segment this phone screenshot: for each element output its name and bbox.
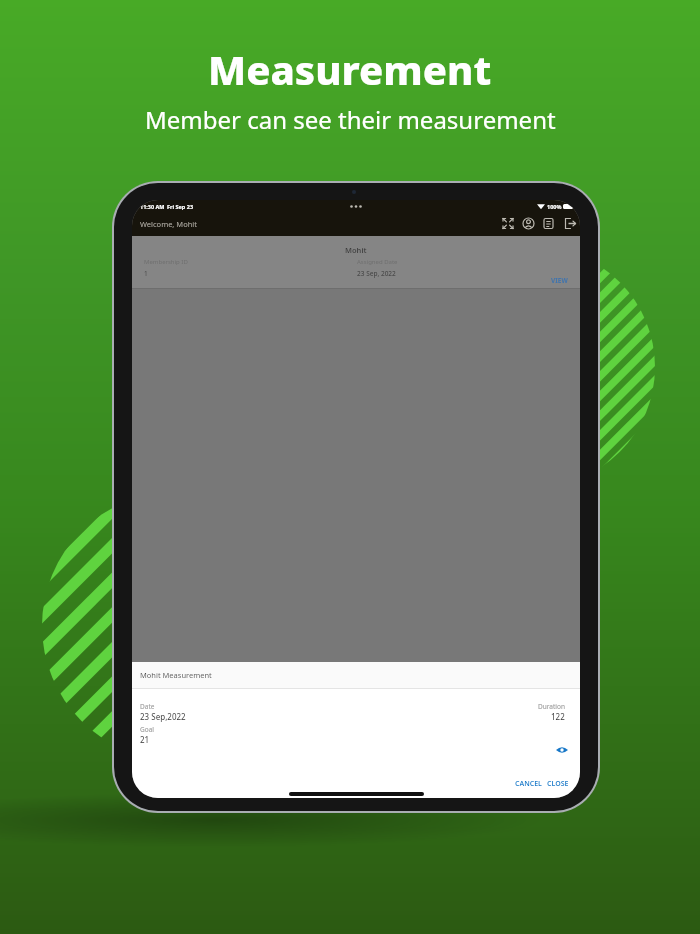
staticText: Measurement bbox=[208, 42, 492, 96]
staticText: 100% bbox=[547, 203, 562, 210]
staticText: 21 bbox=[140, 734, 150, 745]
staticText: 11:30 AM bbox=[140, 203, 165, 210]
staticText: Duration bbox=[538, 702, 565, 711]
staticText: Date bbox=[140, 702, 155, 711]
button[interactable]: VIEW bbox=[551, 276, 568, 285]
staticText: Goal bbox=[140, 725, 154, 734]
staticText: 1 bbox=[144, 269, 148, 278]
button[interactable] bbox=[522, 217, 536, 231]
button[interactable] bbox=[501, 217, 515, 231]
button[interactable] bbox=[542, 217, 556, 231]
staticText: 23 Sep, 2022 bbox=[357, 269, 396, 278]
button[interactable] bbox=[555, 743, 569, 757]
button[interactable]: CLOSE bbox=[547, 779, 569, 789]
button[interactable]: CANCEL bbox=[515, 779, 542, 789]
staticText: Membership ID bbox=[144, 258, 188, 266]
button[interactable] bbox=[563, 217, 577, 231]
staticText: Mohit bbox=[345, 245, 367, 255]
staticText: Welcome, Mohit bbox=[140, 219, 197, 229]
staticText: Mohit Measurement bbox=[140, 670, 212, 680]
staticText: Member can see their measurement bbox=[145, 103, 556, 136]
staticText: Fri Sep 23 bbox=[167, 203, 194, 210]
button[interactable]: Mohit bbox=[132, 236, 580, 288]
staticText: 23 Sep,2022 bbox=[140, 711, 186, 722]
staticText: Assigned Date bbox=[357, 258, 398, 266]
staticText: 122 bbox=[551, 711, 565, 722]
